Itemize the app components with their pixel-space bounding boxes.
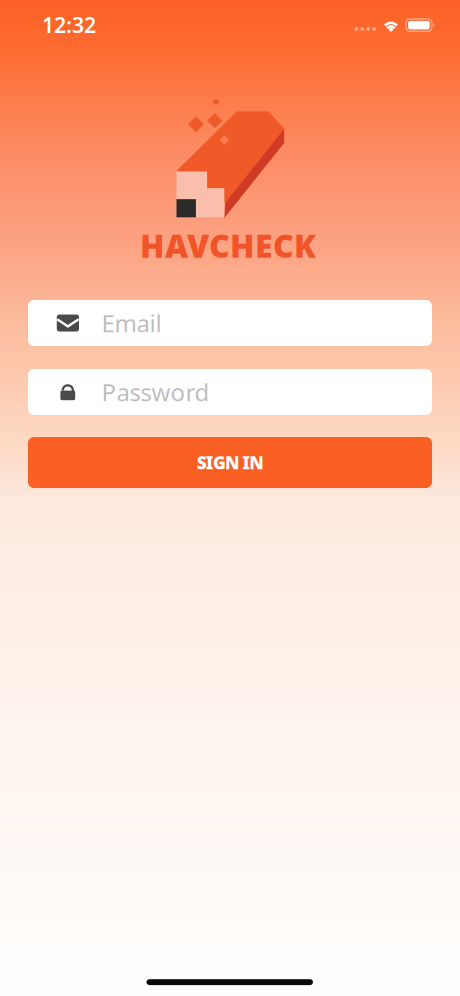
button[interactable]: Password [28, 369, 432, 415]
button[interactable]: Email [28, 300, 432, 346]
button[interactable]: SIGN IN [28, 437, 432, 488]
staticText: Email [102, 307, 162, 339]
staticText: SIGN IN [197, 451, 263, 474]
staticText: HAVCHECK [140, 224, 316, 266]
staticText: 12:32 [42, 10, 96, 39]
staticText: Password [102, 376, 210, 408]
